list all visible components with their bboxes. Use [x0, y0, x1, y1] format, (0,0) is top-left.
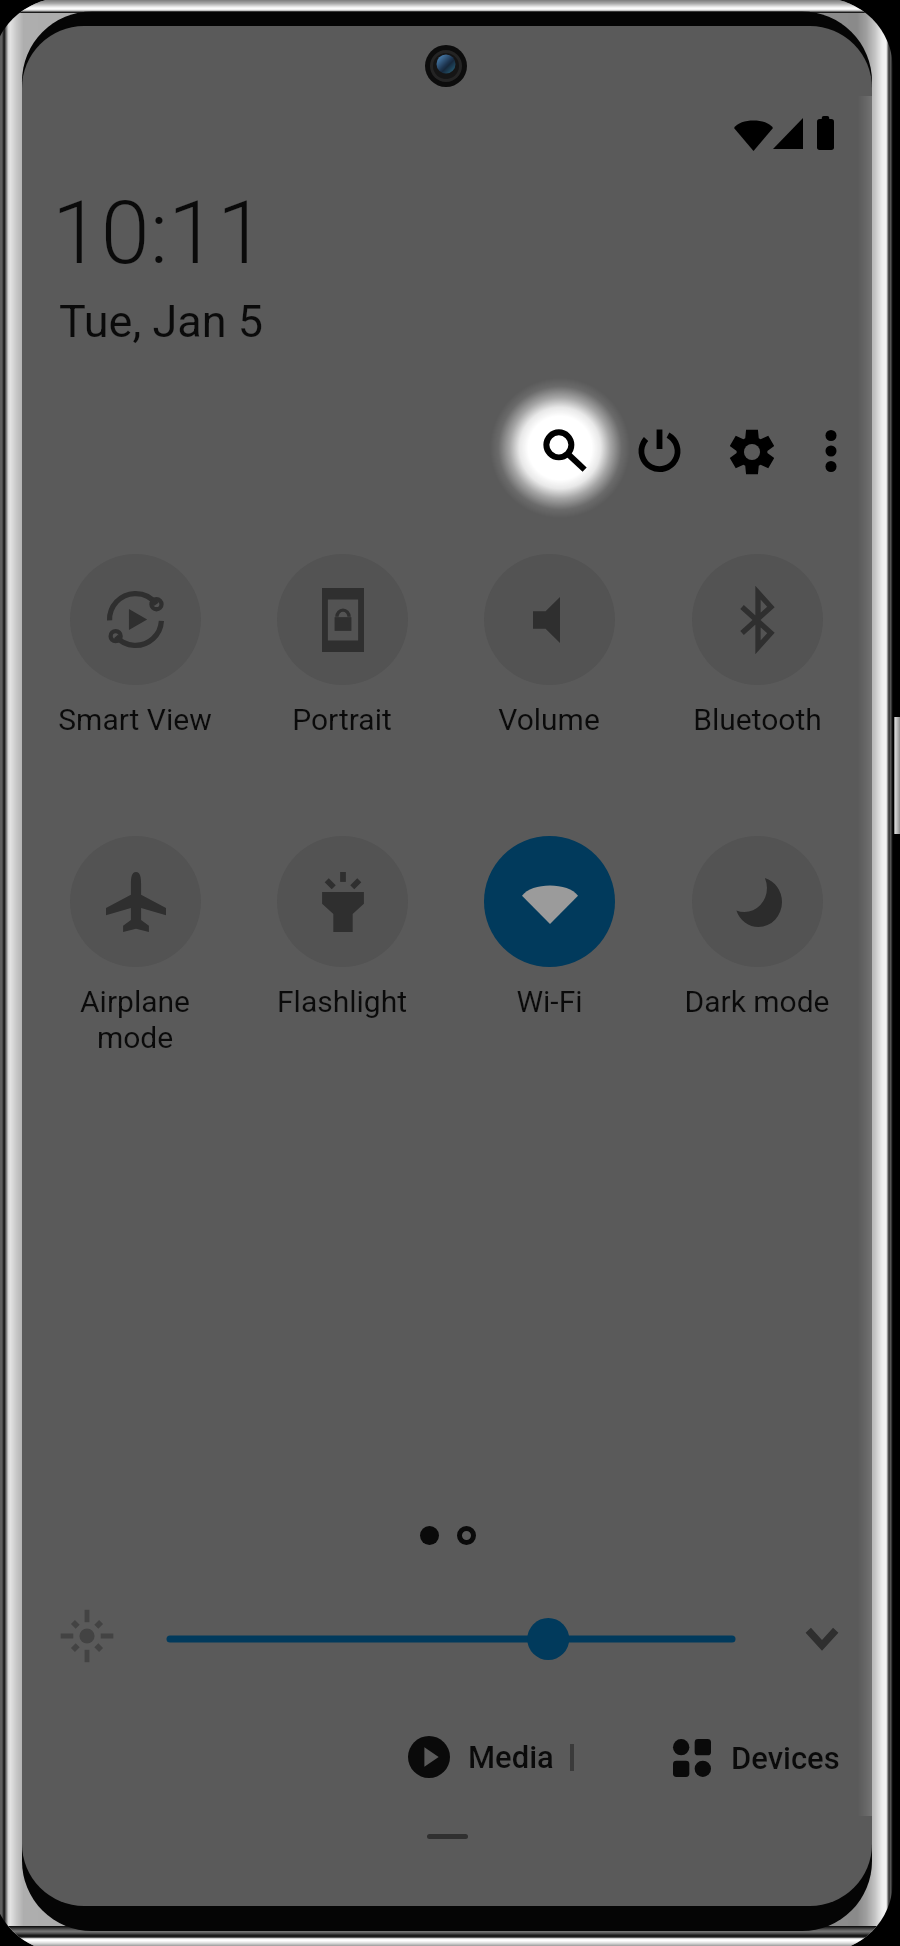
button[interactable]: Media: [400, 1730, 562, 1784]
button[interactable]: Settings: [710, 410, 794, 494]
button[interactable]: Expand: [794, 1608, 850, 1668]
button[interactable]: Wi-Fi: [446, 836, 652, 1019]
staticText: Wi-Fi: [516, 984, 583, 1019]
button[interactable]: Brightness: [57, 1606, 117, 1666]
button[interactable]: Smart View: [32, 554, 238, 737]
button[interactable]: Volume: [446, 554, 652, 737]
staticText: Smart View: [58, 702, 212, 737]
staticText: Tue, Jan 5: [59, 295, 264, 348]
button[interactable]: Bluetooth: [654, 554, 860, 737]
staticText: Dark mode: [684, 984, 830, 1019]
button[interactable]: Portrait: [239, 554, 445, 737]
staticText: Portrait: [292, 702, 392, 737]
button[interactable]: Flashlight: [239, 836, 445, 1019]
staticText: Flashlight: [277, 984, 407, 1019]
button[interactable]: Airplane mode: [32, 836, 238, 1055]
button[interactable]: Devices: [665, 1733, 848, 1783]
staticText: Volume: [498, 702, 600, 737]
button[interactable]: More options: [797, 409, 865, 493]
button[interactable]: Brightness slider: [163, 1609, 739, 1669]
button[interactable]: Power: [617, 406, 701, 490]
staticText: Airplane mode: [80, 984, 190, 1055]
button[interactable]: Search: [521, 407, 605, 491]
staticText: Bluetooth: [693, 702, 822, 737]
staticText: Devices: [731, 1740, 840, 1776]
staticText: 10:11: [52, 181, 266, 284]
staticText: Media: [468, 1739, 554, 1775]
button[interactable]: Dark mode: [654, 836, 860, 1019]
